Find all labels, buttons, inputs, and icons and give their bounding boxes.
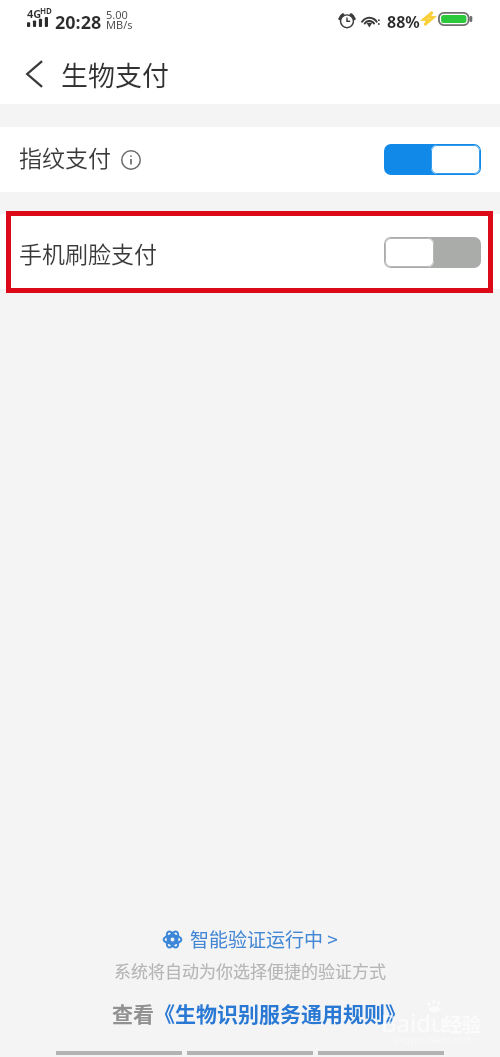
staticText: 智能验证运行中 > [190, 925, 338, 953]
staticText: Baidu [381, 1006, 446, 1039]
button[interactable]: Switch off [384, 237, 481, 268]
staticText: 20:28 [55, 10, 102, 35]
staticText: 查看 [112, 998, 154, 1026]
button[interactable]: 智能验证运行中 > [163, 925, 338, 953]
staticText: 《生物识别服务通用规则》 [154, 998, 406, 1026]
button[interactable]: Switch on [384, 144, 481, 175]
staticText: 系统将自动为你选择便捷的验证方式 [114, 958, 386, 982]
staticText: 指纹支付 [19, 140, 111, 173]
staticText: 生物支付 [61, 55, 169, 94]
button[interactable]: 手机刷脸支付 [0, 214, 500, 289]
staticText: 5.00 [106, 7, 128, 22]
staticText: MB/s [106, 17, 133, 32]
button[interactable]: 指纹支付 [0, 127, 500, 192]
staticText: 88% [387, 11, 420, 33]
button[interactable]: Back [8, 48, 60, 100]
button[interactable]: 查看 [112, 998, 406, 1026]
staticText: 手机刷脸支付 [19, 236, 157, 269]
staticText: HD [40, 5, 52, 16]
staticText: 4G [27, 6, 42, 21]
